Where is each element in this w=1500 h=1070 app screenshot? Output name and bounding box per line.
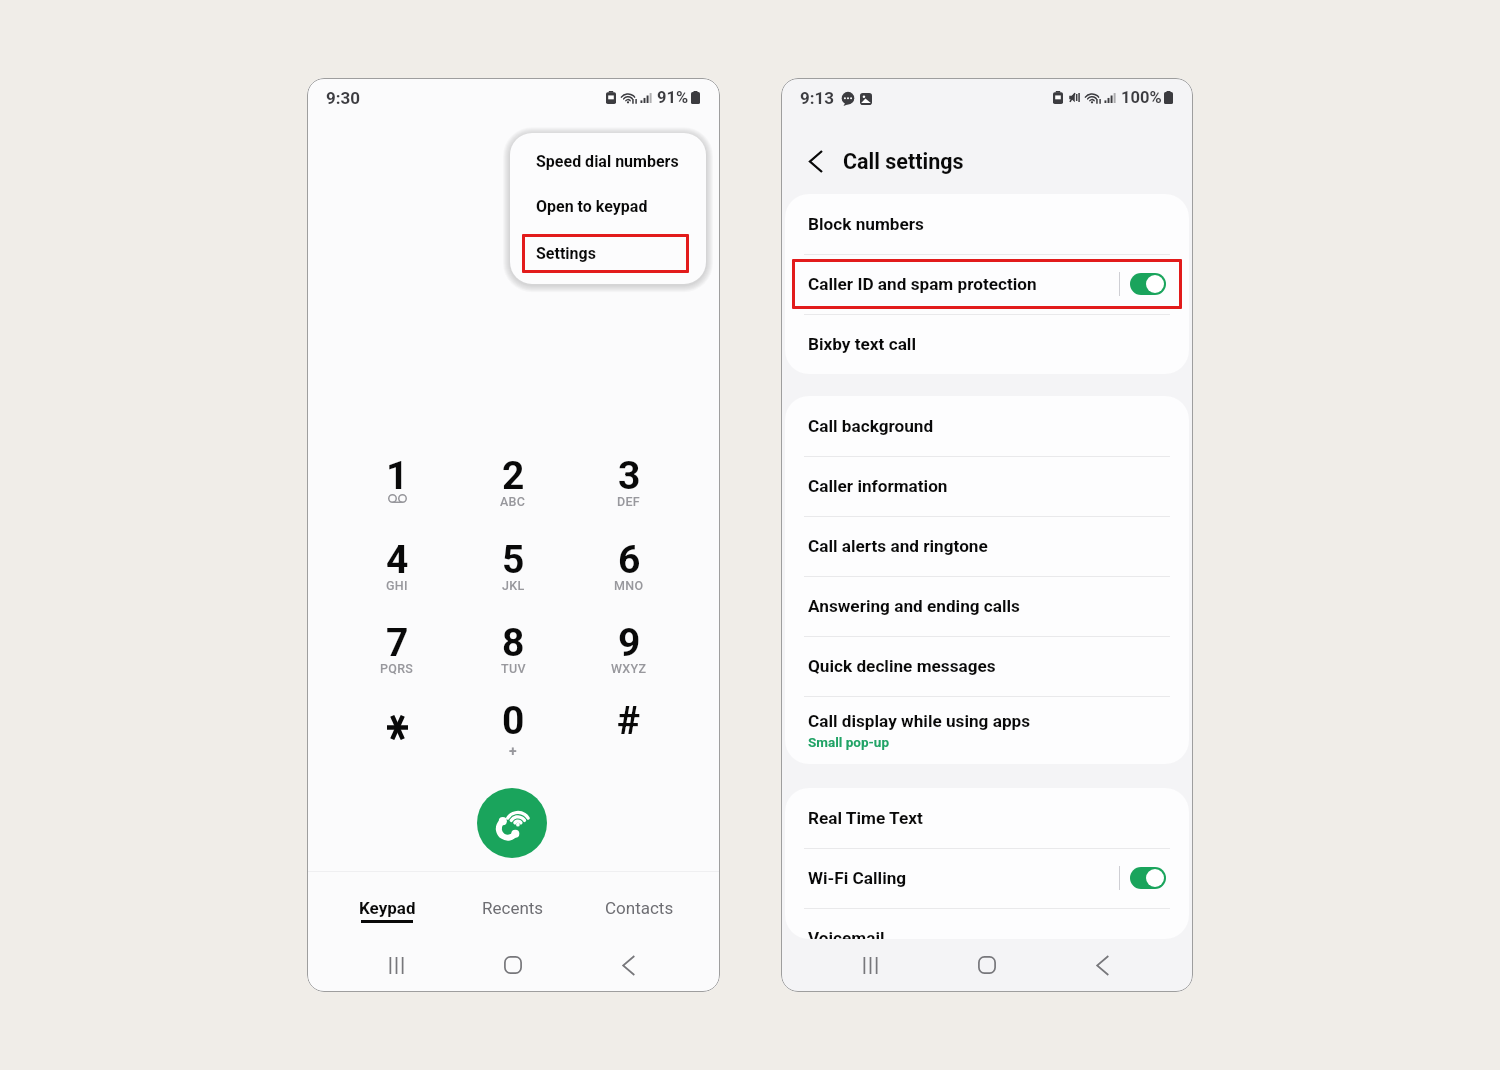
button[interactable]: Back	[799, 144, 833, 178]
staticText: Call settings	[843, 149, 964, 174]
button[interactable]	[345, 694, 449, 768]
button[interactable]: 5	[461, 533, 565, 607]
staticText: 6	[618, 537, 641, 583]
button[interactable]: Speed dial numbers	[510, 140, 706, 186]
staticText: Caller ID and spam protection	[808, 274, 1037, 294]
button[interactable]: Recent apps	[841, 943, 900, 987]
staticText: MNO	[614, 578, 644, 593]
staticText: DEF	[617, 494, 641, 509]
staticText: Wi-Fi Calling	[808, 868, 907, 888]
staticText: PQRS	[380, 661, 414, 676]
staticText: Call display while using apps	[808, 711, 1031, 731]
staticText: TUV	[501, 661, 526, 676]
staticText: Settings	[536, 244, 596, 263]
button[interactable]: Contacts	[587, 878, 691, 934]
button[interactable]: Open to keypad	[510, 185, 706, 231]
button[interactable]: 2	[461, 449, 565, 523]
button[interactable]: Call alerts and ringtone	[785, 516, 1189, 576]
staticText: 9:13	[800, 88, 835, 108]
button[interactable]: 3	[577, 449, 681, 523]
staticText: 5	[502, 537, 525, 583]
staticText: 9:30	[326, 88, 361, 108]
button[interactable]: Answering and ending calls	[785, 576, 1189, 636]
staticText: Answering and ending calls	[808, 596, 1020, 616]
staticText: Keypad	[359, 898, 416, 918]
staticText: Caller information	[808, 476, 948, 496]
staticText: Call alerts and ringtone	[808, 536, 988, 556]
button[interactable]: Caller ID and spam protection	[785, 254, 1189, 314]
staticText: WXYZ	[611, 661, 647, 676]
staticText: Real Time Text	[808, 808, 923, 828]
button[interactable]: Call background	[785, 396, 1189, 456]
button[interactable]: Toggle	[1130, 867, 1166, 889]
staticText: #	[617, 698, 641, 744]
button[interactable]: 4	[345, 533, 449, 607]
button[interactable]: Recent apps	[367, 943, 426, 987]
staticText: GHI	[386, 578, 408, 593]
button[interactable]: Home	[483, 943, 542, 987]
button[interactable]: Real Time Text	[785, 788, 1189, 848]
staticText: 1	[386, 453, 409, 499]
button[interactable]: Caller information	[785, 456, 1189, 516]
staticText: +	[509, 743, 517, 759]
staticText: 9	[618, 620, 641, 666]
button[interactable]: 7	[345, 616, 449, 690]
button[interactable]: Settings	[510, 232, 706, 278]
staticText: 4	[386, 537, 409, 583]
button[interactable]: Back	[1073, 943, 1132, 987]
button[interactable]: Recents	[461, 878, 565, 934]
staticText: 91%	[657, 88, 689, 107]
button[interactable]: Block numbers	[785, 194, 1189, 254]
staticText: Block numbers	[808, 214, 924, 234]
staticText: Bixby text call	[808, 334, 916, 354]
staticText: 3	[618, 453, 641, 499]
staticText: JKL	[502, 578, 525, 593]
staticText: ABC	[500, 494, 526, 509]
button[interactable]: 0	[461, 694, 565, 768]
staticText: Contacts	[605, 898, 674, 918]
button[interactable]: Wi-Fi Calling	[785, 848, 1189, 908]
staticText: Quick decline messages	[808, 656, 996, 676]
staticText: Voicemail	[808, 928, 885, 939]
staticText: Small pop-up	[808, 734, 890, 750]
button[interactable]: Bixby text call	[785, 314, 1189, 374]
button[interactable]: Call	[477, 788, 547, 858]
button[interactable]: Quick decline messages	[785, 636, 1189, 696]
button[interactable]: Home	[957, 943, 1016, 987]
staticText: Recents	[482, 898, 544, 918]
staticText: 8	[502, 620, 525, 666]
button[interactable]: Voicemail	[785, 908, 1189, 939]
button[interactable]: 6	[577, 533, 681, 607]
button[interactable]: Back	[599, 943, 658, 987]
button[interactable]: Call display while using apps	[785, 696, 1189, 764]
staticText: 7	[386, 620, 409, 666]
button[interactable]: 8	[461, 616, 565, 690]
button[interactable]: #	[577, 694, 681, 768]
button[interactable]: Keypad	[335, 878, 439, 934]
staticText: 2	[502, 453, 525, 499]
button[interactable]: 9	[577, 616, 681, 690]
staticText: 0	[502, 698, 525, 744]
staticText: Open to keypad	[536, 197, 648, 216]
staticText: 100%	[1121, 88, 1162, 107]
staticText: Call background	[808, 416, 934, 436]
button[interactable]: Toggle	[1130, 273, 1166, 295]
button[interactable]: 1	[345, 449, 449, 523]
staticText: Speed dial numbers	[536, 152, 679, 171]
